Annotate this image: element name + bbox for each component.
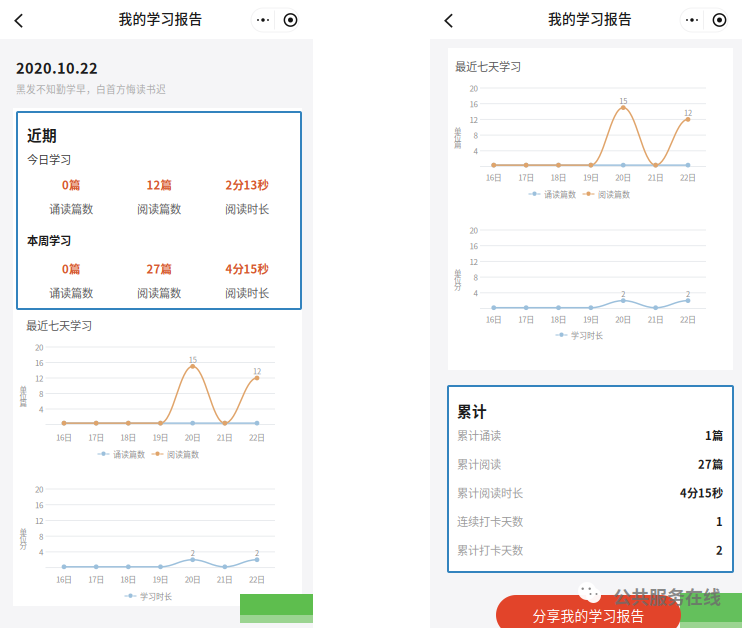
- staticText: 12: [35, 515, 43, 526]
- staticText: 15: [189, 354, 197, 365]
- staticText: 20日: [615, 313, 631, 325]
- staticText: 19日: [583, 313, 599, 325]
- staticText: 2分13秒: [225, 176, 268, 193]
- staticText: 0篇: [62, 176, 80, 193]
- staticText: 最近七天学习: [455, 58, 521, 74]
- staticText: 12: [253, 366, 261, 376]
- staticText: 4: [39, 403, 43, 415]
- staticText: 27篇: [698, 456, 723, 472]
- staticText: 诵读篇数: [49, 284, 93, 301]
- staticText: 16: [469, 240, 477, 251]
- staticText: 累计打卡天数: [457, 542, 523, 558]
- staticText: 20: [35, 483, 43, 495]
- staticText: 19日: [583, 171, 599, 183]
- staticText: 20日: [185, 573, 201, 585]
- staticText: 今日学习: [27, 151, 71, 167]
- staticText: 18日: [120, 573, 136, 585]
- staticText: 4: [473, 287, 477, 299]
- staticText: 27篇: [146, 260, 171, 277]
- staticText: 阅读篇数: [598, 188, 630, 200]
- staticText: 公共服务在线: [613, 583, 721, 609]
- staticText: 位: [454, 132, 461, 143]
- staticText: 分: [454, 281, 461, 292]
- staticText: 19日: [152, 573, 168, 585]
- staticText: 1: [716, 513, 723, 529]
- staticText: 单: [19, 384, 26, 395]
- staticText: 阅读篇数: [137, 284, 181, 301]
- staticText: 20: [469, 82, 477, 94]
- button[interactable]: Close: [707, 8, 732, 32]
- staticText: 21日: [648, 313, 664, 325]
- staticText: 20日: [185, 431, 201, 443]
- staticText: 12: [35, 372, 43, 384]
- staticText: 1篇: [705, 427, 723, 443]
- staticText: 分: [19, 540, 26, 551]
- staticText: 16: [35, 499, 43, 510]
- button[interactable]: Back: [439, 9, 459, 29]
- staticText: 21日: [648, 171, 664, 183]
- staticText: 2: [686, 288, 690, 299]
- staticText: 8: [39, 388, 43, 399]
- staticText: 21日: [217, 573, 233, 585]
- staticText: 12篇: [146, 176, 171, 193]
- staticText: 16: [35, 357, 43, 368]
- staticText: 20日: [615, 171, 631, 183]
- button[interactable]: More: [681, 8, 703, 32]
- staticText: 2020.10.22: [16, 57, 98, 78]
- staticText: 4分15秒: [225, 260, 268, 277]
- staticText: 17日: [518, 313, 534, 325]
- staticText: 22日: [249, 431, 265, 443]
- staticText: 学习时长: [571, 329, 603, 341]
- staticText: 8: [473, 271, 477, 283]
- staticText: 近期: [27, 124, 57, 145]
- staticText: 2: [621, 288, 625, 299]
- staticText: 累计阅读时长: [457, 484, 523, 501]
- staticText: 17日: [518, 171, 534, 183]
- staticText: 篇: [454, 139, 461, 150]
- button[interactable]: Back: [9, 9, 29, 29]
- staticText: 连续打卡天数: [457, 513, 523, 529]
- staticText: 阅读时长: [225, 284, 269, 301]
- staticText: 本周学习: [27, 232, 71, 248]
- staticText: 单: [454, 126, 461, 136]
- staticText: 17日: [88, 431, 104, 443]
- staticText: 诵读篇数: [49, 200, 93, 217]
- staticText: 单: [454, 268, 461, 278]
- staticText: 0篇: [62, 260, 80, 277]
- staticText: 累计: [457, 400, 487, 421]
- staticText: 16日: [486, 171, 502, 183]
- staticText: 我的学习报告: [548, 8, 632, 28]
- staticText: 2: [716, 542, 723, 558]
- staticText: 4: [39, 546, 43, 558]
- staticText: 4分15秒: [680, 484, 723, 501]
- staticText: 分享我的学习报告: [532, 605, 644, 625]
- staticText: 16日: [56, 431, 72, 443]
- staticText: 累计诵读: [457, 427, 501, 443]
- staticText: 8: [39, 530, 43, 542]
- staticText: 22日: [249, 573, 265, 585]
- staticText: 2: [191, 547, 195, 558]
- staticText: 20: [35, 341, 43, 353]
- staticText: 12: [469, 114, 477, 125]
- button[interactable]: Close: [278, 8, 303, 32]
- staticText: 学习时长: [140, 590, 172, 602]
- staticText: 我的学习报告: [118, 8, 202, 28]
- staticText: 位: [19, 533, 26, 544]
- staticText: 18日: [120, 431, 136, 443]
- staticText: 篇: [19, 397, 26, 408]
- staticText: 22日: [680, 313, 696, 325]
- staticText: 17日: [88, 573, 104, 585]
- button[interactable]: 分享我的学习报告: [496, 595, 681, 628]
- staticText: 阅读时长: [225, 200, 269, 217]
- staticText: 22日: [680, 171, 696, 183]
- staticText: 15: [619, 95, 627, 106]
- staticText: 4: [473, 145, 477, 157]
- staticText: 16日: [56, 573, 72, 585]
- staticText: 21日: [217, 431, 233, 443]
- staticText: 18日: [550, 171, 566, 183]
- button[interactable]: More: [252, 8, 274, 32]
- staticText: 累计阅读: [457, 456, 501, 472]
- staticText: 18日: [550, 313, 566, 325]
- staticText: 单: [19, 527, 26, 537]
- staticText: 黑发不知勤学早，白首方悔读书迟: [16, 82, 166, 96]
